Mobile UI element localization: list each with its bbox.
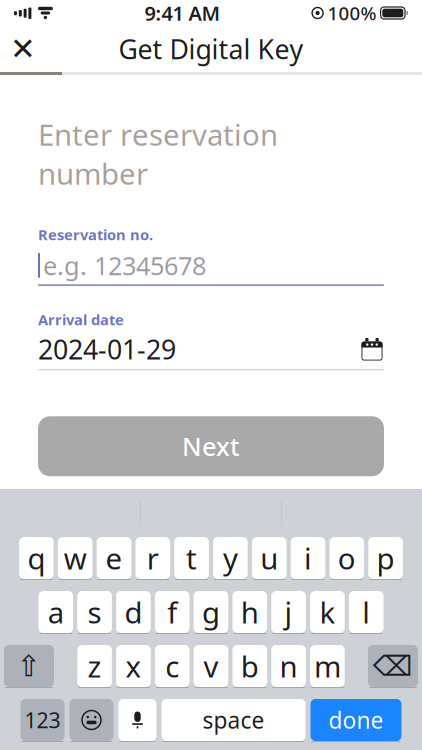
button[interactable]: g bbox=[194, 591, 228, 634]
button[interactable]: w bbox=[58, 537, 92, 580]
button[interactable]: Close bbox=[0, 26, 46, 72]
button[interactable]: k bbox=[310, 591, 345, 634]
staticText: q bbox=[27, 538, 45, 577]
staticText: space bbox=[202, 705, 264, 735]
staticText: t bbox=[186, 538, 197, 577]
button[interactable]: 2024-01-29 bbox=[38, 334, 384, 364]
staticText: y bbox=[223, 538, 238, 577]
button[interactable]: h bbox=[232, 591, 267, 634]
staticText: j bbox=[285, 592, 293, 631]
staticText: o bbox=[338, 538, 356, 577]
button[interactable]: x bbox=[116, 645, 151, 688]
button[interactable]: o bbox=[329, 537, 364, 580]
button[interactable]: i bbox=[291, 537, 325, 580]
staticText: r bbox=[147, 538, 159, 577]
staticText: ⇧ bbox=[16, 649, 41, 683]
staticText: done bbox=[328, 705, 383, 735]
staticText: s bbox=[88, 592, 102, 631]
button[interactable]: e bbox=[97, 537, 131, 580]
staticText: e.g. 12345678 bbox=[43, 249, 206, 282]
button[interactable]: d bbox=[116, 591, 151, 634]
button[interactable]: f bbox=[155, 591, 189, 634]
button[interactable]: c bbox=[155, 645, 189, 688]
staticText: 123 bbox=[24, 706, 60, 734]
button[interactable]: Emoji bbox=[69, 699, 113, 742]
staticText: 9:41 AM bbox=[144, 0, 220, 26]
staticText: k bbox=[319, 592, 335, 631]
button[interactable]: u bbox=[252, 537, 286, 580]
button[interactable]: v bbox=[194, 645, 228, 688]
button[interactable]: n bbox=[271, 645, 306, 688]
staticText: h bbox=[241, 592, 259, 631]
staticText: e bbox=[105, 538, 122, 577]
staticText: i bbox=[304, 538, 312, 577]
staticText: p bbox=[377, 538, 395, 577]
staticText: Enter reservation number bbox=[38, 115, 278, 193]
button[interactable]: z bbox=[77, 645, 112, 688]
button[interactable]: e.g. 12345678 bbox=[38, 251, 384, 279]
button[interactable]: s bbox=[77, 591, 112, 634]
button[interactable]: q bbox=[19, 537, 54, 580]
staticText: ⌫ bbox=[373, 650, 413, 682]
button[interactable]: m bbox=[310, 645, 345, 688]
staticText: x bbox=[125, 646, 141, 685]
staticText: a bbox=[48, 592, 64, 631]
staticText: n bbox=[280, 646, 298, 685]
button[interactable]: Dictate bbox=[118, 699, 156, 742]
staticText: l bbox=[362, 592, 370, 631]
staticText: Reservation no. bbox=[38, 225, 153, 244]
staticText: c bbox=[165, 646, 179, 685]
button[interactable]: j bbox=[271, 591, 306, 634]
button[interactable]: b bbox=[232, 645, 267, 688]
button[interactable]: a bbox=[38, 591, 73, 634]
button[interactable]: p bbox=[368, 537, 403, 580]
staticText: b bbox=[241, 646, 259, 685]
staticText: Get Digital Key bbox=[118, 31, 303, 67]
staticText: m bbox=[314, 646, 341, 685]
staticText: d bbox=[124, 592, 142, 631]
staticText: Next bbox=[182, 429, 240, 463]
staticText: g bbox=[202, 592, 220, 631]
button[interactable]: t bbox=[174, 537, 209, 580]
button[interactable]: Next bbox=[38, 416, 384, 476]
staticText: ✕ bbox=[10, 32, 36, 66]
button[interactable]: r bbox=[135, 537, 170, 580]
staticText: w bbox=[64, 538, 87, 577]
button[interactable]: done bbox=[310, 699, 401, 742]
staticText: u bbox=[260, 538, 278, 577]
staticText: Arrival date bbox=[38, 310, 124, 329]
button[interactable]: Delete bbox=[368, 645, 418, 688]
button[interactable]: space bbox=[161, 699, 305, 742]
staticText: v bbox=[203, 646, 218, 685]
staticText: 2024-01-29 bbox=[38, 332, 176, 367]
staticText: 100% bbox=[328, 1, 377, 25]
button[interactable]: Shift bbox=[4, 645, 54, 688]
button[interactable]: Numbers bbox=[20, 699, 64, 742]
staticText: z bbox=[88, 646, 102, 685]
button[interactable]: y bbox=[213, 537, 248, 580]
button[interactable]: l bbox=[349, 591, 383, 634]
staticText: f bbox=[167, 592, 177, 631]
